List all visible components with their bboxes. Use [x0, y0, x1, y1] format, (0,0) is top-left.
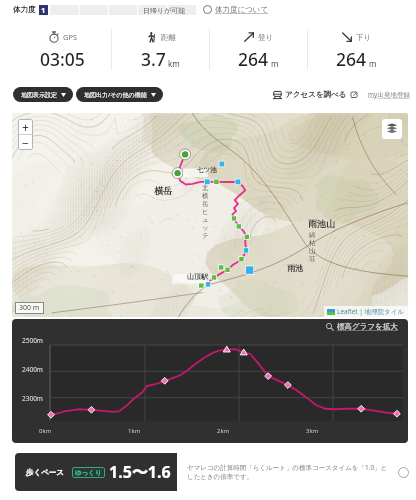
button[interactable]: Map [12, 113, 408, 317]
staticText: 1km [128, 427, 141, 435]
button[interactable]: 距離 [112, 19, 209, 82]
staticText: ヤマレコの計算時間「らくルート」の標準コースタイムを「1.0」としたときの倍率で… [187, 463, 393, 481]
staticText: ゆっくり [75, 469, 102, 477]
staticText: 264 [238, 47, 269, 71]
staticText: 雨池山 [308, 218, 335, 229]
staticText: Leaflet | 地理院タイル [337, 307, 405, 316]
staticText: 七ツ池 [197, 166, 217, 174]
staticText: 日帰りが可能 [143, 6, 186, 15]
button[interactable]: 歩くペース [15, 453, 177, 491]
button[interactable]: 地図出力/その他の機能 [76, 87, 163, 102]
staticText: 北 [202, 184, 209, 192]
staticText: 2300m [22, 394, 43, 403]
staticText: 3.7 [141, 47, 166, 71]
button[interactable]: Zoom in [18, 119, 33, 134]
staticText: 枯 [309, 239, 316, 247]
staticText: − [22, 135, 29, 150]
button[interactable]: my出発地登録 [368, 90, 410, 99]
staticText: 2400m [22, 365, 43, 374]
button[interactable]: 標高グラフを拡大 [326, 322, 398, 331]
staticText: 縞 [309, 231, 316, 239]
staticText: m [369, 58, 377, 69]
staticText: 264 [336, 47, 367, 71]
staticText: 山 [309, 247, 316, 255]
staticText: 2500m [22, 336, 43, 345]
staticText: 登り [258, 33, 274, 42]
staticText: 0km [39, 427, 52, 435]
button[interactable]: 地図表示設定 [13, 87, 73, 102]
staticText: 地図表示設定 [21, 91, 57, 99]
button[interactable]: 体力度について [203, 5, 269, 14]
staticText: + [22, 119, 29, 134]
staticText: アクセスを調べる [285, 90, 347, 99]
button[interactable]: 登り [210, 19, 307, 82]
button[interactable]: Zoom out [18, 135, 33, 150]
staticText: 距離 [161, 33, 176, 42]
staticText: テ [202, 232, 209, 240]
staticText: 3km [306, 427, 319, 435]
staticText: 岳 [202, 200, 209, 208]
staticText: my出発地登録 [368, 90, 410, 99]
button[interactable]: アクセスを調べる [273, 90, 358, 99]
staticText: 標高グラフを拡大 [337, 322, 398, 331]
staticText: 体力度について [215, 5, 269, 14]
staticText: 03:05 [40, 47, 85, 71]
staticText: ュ [202, 216, 209, 224]
staticText: 荘 [309, 255, 316, 263]
staticText: GPS [63, 32, 78, 42]
staticText: 1.5〜1.6 [109, 461, 171, 483]
button[interactable]: 下り [308, 19, 405, 82]
staticText: 横岳 [154, 185, 172, 196]
staticText: 2km [217, 427, 230, 435]
staticText: 歩くペース [26, 468, 65, 477]
staticText: ヒ [202, 208, 209, 216]
staticText: 横 [202, 192, 209, 200]
staticText: 300 m [19, 303, 40, 313]
button[interactable]: Layers [382, 119, 402, 139]
staticText: 雨池 [287, 263, 303, 273]
staticText: km [168, 58, 180, 69]
staticText: m [271, 58, 279, 69]
staticText: 下り [356, 33, 372, 42]
staticText: 1 [41, 5, 46, 15]
staticText: ッ [202, 224, 209, 232]
button[interactable]: GPS [14, 19, 111, 82]
staticText: 山頂駅 [187, 272, 208, 281]
staticText: 地図出力/その他の機能 [84, 91, 147, 99]
staticText: 体力度 [13, 5, 36, 14]
